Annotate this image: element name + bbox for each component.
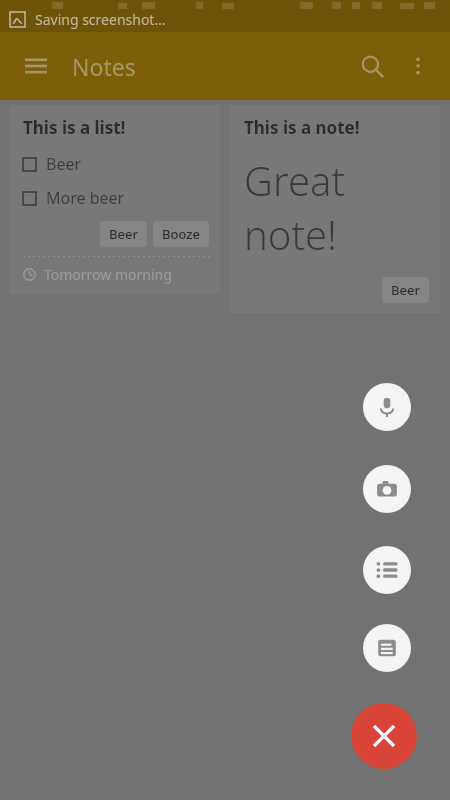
button[interactable]: Booze	[153, 221, 209, 247]
staticText: Saving screenshot…	[35, 10, 166, 29]
button[interactable]: Beer	[382, 277, 429, 303]
button[interactable]: Open navigation drawer	[14, 44, 58, 88]
staticText: This is a list!	[23, 116, 126, 139]
button[interactable]: New list	[363, 546, 411, 594]
staticText: Booze	[162, 225, 200, 243]
staticText: Beer	[46, 153, 82, 175]
button[interactable]: Close	[351, 703, 417, 769]
button[interactable]: Search	[350, 44, 394, 88]
staticText: Notes	[72, 51, 136, 82]
button[interactable]: New text note	[363, 624, 411, 672]
button[interactable]: More beer	[23, 187, 209, 209]
staticText: This is a note!	[244, 116, 360, 139]
staticText: Beer	[391, 281, 420, 299]
button[interactable]: Beer	[23, 153, 209, 175]
button[interactable]: This is a note!	[230, 105, 440, 313]
staticText: Great note!	[244, 153, 429, 261]
staticText: Tomorrow morning	[44, 265, 172, 284]
staticText: More beer	[46, 187, 125, 209]
button[interactable]: New photo note	[363, 465, 411, 513]
button[interactable]: New voice note	[363, 383, 411, 431]
button[interactable]: Beer	[100, 221, 147, 247]
staticText: Beer	[109, 225, 138, 243]
button[interactable]: This is a list!	[10, 105, 220, 294]
button[interactable]: More options	[396, 44, 440, 88]
